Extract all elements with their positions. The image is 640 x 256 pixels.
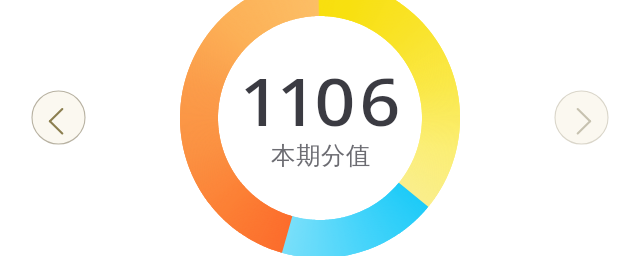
staticText: 1 [276,57,318,146]
button[interactable]: Previous [31,90,86,145]
staticText: 本期分值 [271,141,371,172]
button[interactable]: Next [554,90,609,145]
staticText: 1 [239,57,281,146]
staticText: 0 [314,57,356,146]
staticText: 6 [359,57,401,146]
